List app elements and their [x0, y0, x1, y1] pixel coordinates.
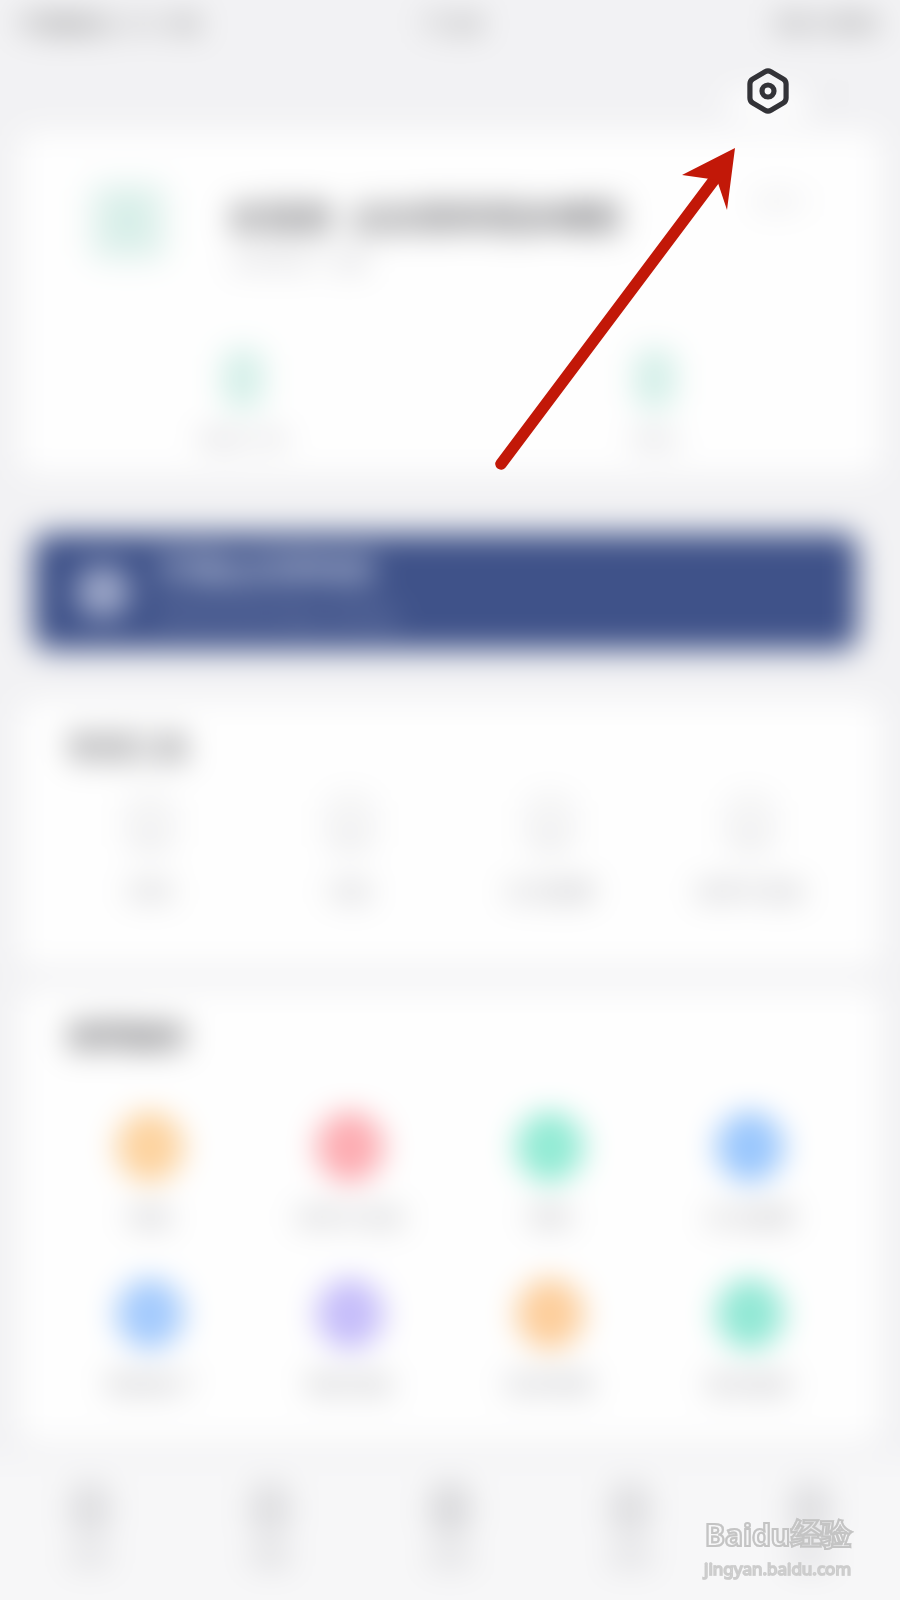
- button[interactable]: 发现: [540, 1458, 720, 1600]
- staticText: jingyan.baidu.com: [704, 1557, 852, 1580]
- staticText: 常用工具: [68, 730, 188, 768]
- button[interactable]: Settings: [744, 67, 792, 115]
- staticText: 推荐服务: [68, 1018, 188, 1056]
- staticText: 经验: [791, 1516, 851, 1554]
- button[interactable]: 我的账户: [50, 1283, 250, 1399]
- staticText: 立即登录 / 注册: [230, 248, 368, 275]
- button[interactable]: 开通会员享特权: [33, 533, 858, 650]
- staticText: 中国移动 ıl ıl 4G: [19, 7, 201, 38]
- button[interactable]: 我的: [720, 1458, 900, 1600]
- staticText: 我的账户: [106, 1371, 194, 1399]
- button[interactable]: 扫码: [50, 802, 250, 906]
- button[interactable]: 钱包: [449, 354, 861, 474]
- button[interactable]: 理财: [450, 1116, 650, 1232]
- staticText: 我的: [789, 1545, 831, 1571]
- button[interactable]: 生活缴费: [650, 1116, 850, 1232]
- button[interactable]: 生活: [360, 1458, 540, 1600]
- button[interactable]: 投资理财: [450, 1283, 650, 1399]
- staticText: Baidu: [705, 1514, 791, 1555]
- button[interactable]: 付款: [250, 802, 450, 906]
- button[interactable]: 我的订单: [37, 354, 449, 474]
- button[interactable]: 转账: [50, 1116, 250, 1232]
- staticText: 欢迎您 点击登录更多精彩: [230, 194, 622, 240]
- button[interactable]: 生活缴费: [450, 802, 650, 906]
- staticText: 尊享多项专属会员权益: [158, 602, 398, 632]
- staticText: 开通会员享特权: [158, 551, 375, 590]
- button[interactable]: 理财: [180, 1458, 360, 1600]
- button[interactable]: 更多服务: [650, 1283, 850, 1399]
- button[interactable]: 信用卡还款: [250, 1116, 450, 1232]
- button[interactable]: 首页: [0, 1458, 180, 1600]
- button[interactable]: 信用卡还款: [650, 802, 850, 906]
- button[interactable]: 我的贷款: [250, 1283, 450, 1399]
